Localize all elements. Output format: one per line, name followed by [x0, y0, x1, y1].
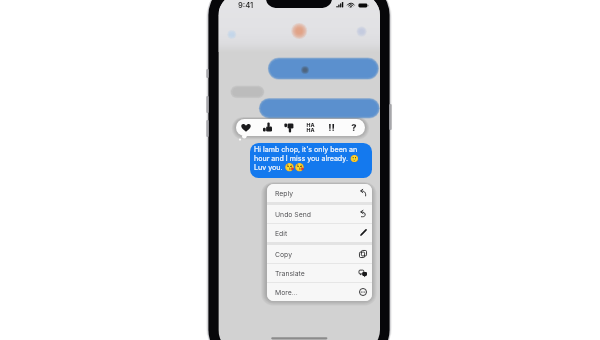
button[interactable]: Reply [267, 184, 372, 202]
button[interactable]: Edit [267, 224, 372, 242]
staticText: Copy [275, 250, 293, 258]
staticText: Undo Send [275, 210, 311, 218]
button[interactable]: Hi lamb chop, it's only been an hour and… [250, 143, 372, 178]
button[interactable]: Undo Send [267, 205, 372, 223]
button[interactable]: Haha reaction [303, 119, 318, 136]
staticText: !! [328, 122, 335, 133]
staticText: Reply [275, 189, 294, 197]
staticText: ? [351, 122, 357, 133]
button[interactable]: More... [267, 283, 372, 301]
staticText: More... [275, 288, 298, 296]
staticText: Translate [275, 269, 305, 277]
button[interactable]: Heart reaction [237, 119, 255, 136]
button[interactable]: Thumbs up reaction [259, 119, 277, 136]
staticText: 9:41 [238, 1, 254, 10]
staticText: Hi lamb chop, it's only been an hour and… [254, 145, 368, 172]
button[interactable]: Exclamation reaction [324, 119, 339, 136]
button[interactable]: Copy [267, 245, 372, 263]
staticText: Edit [275, 229, 288, 237]
button[interactable]: Home indicator [271, 337, 327, 339]
button[interactable]: Thumbs down reaction [280, 119, 298, 136]
staticText: HA HA [306, 122, 315, 133]
button[interactable]: Translate [267, 264, 372, 282]
button[interactable]: Question mark reaction [346, 119, 361, 136]
